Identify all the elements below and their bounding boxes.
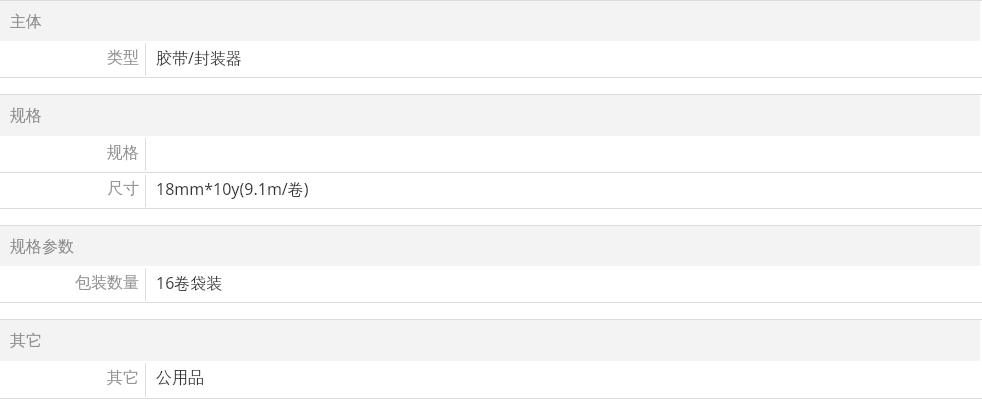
button[interactable]: 包装数量: [0, 266, 982, 303]
button[interactable]: 尺寸: [0, 173, 982, 209]
button[interactable]: 主体: [0, 0, 982, 41]
staticText: 包装数量: [0, 273, 139, 293]
staticText: 公用品: [156, 368, 204, 388]
staticText: 16卷袋装: [156, 272, 223, 294]
staticText: 规格: [10, 106, 42, 126]
staticText: 规格参数: [10, 237, 74, 257]
button[interactable]: 规格: [0, 94, 982, 136]
button[interactable]: 规格: [0, 136, 982, 173]
staticText: 18mm*10y(9.1m/卷): [156, 178, 309, 200]
button[interactable]: 其它: [0, 361, 982, 399]
staticText: 尺寸: [0, 179, 139, 199]
staticText: 其它: [0, 368, 139, 388]
button[interactable]: 其它: [0, 319, 982, 361]
staticText: 其它: [10, 331, 42, 351]
button[interactable]: 类型: [0, 41, 982, 78]
staticText: 胶带/封装器: [156, 47, 242, 69]
staticText: 类型: [0, 48, 139, 68]
staticText: 主体: [10, 12, 42, 32]
staticText: 规格: [0, 143, 139, 163]
button[interactable]: 规格参数: [0, 225, 982, 266]
